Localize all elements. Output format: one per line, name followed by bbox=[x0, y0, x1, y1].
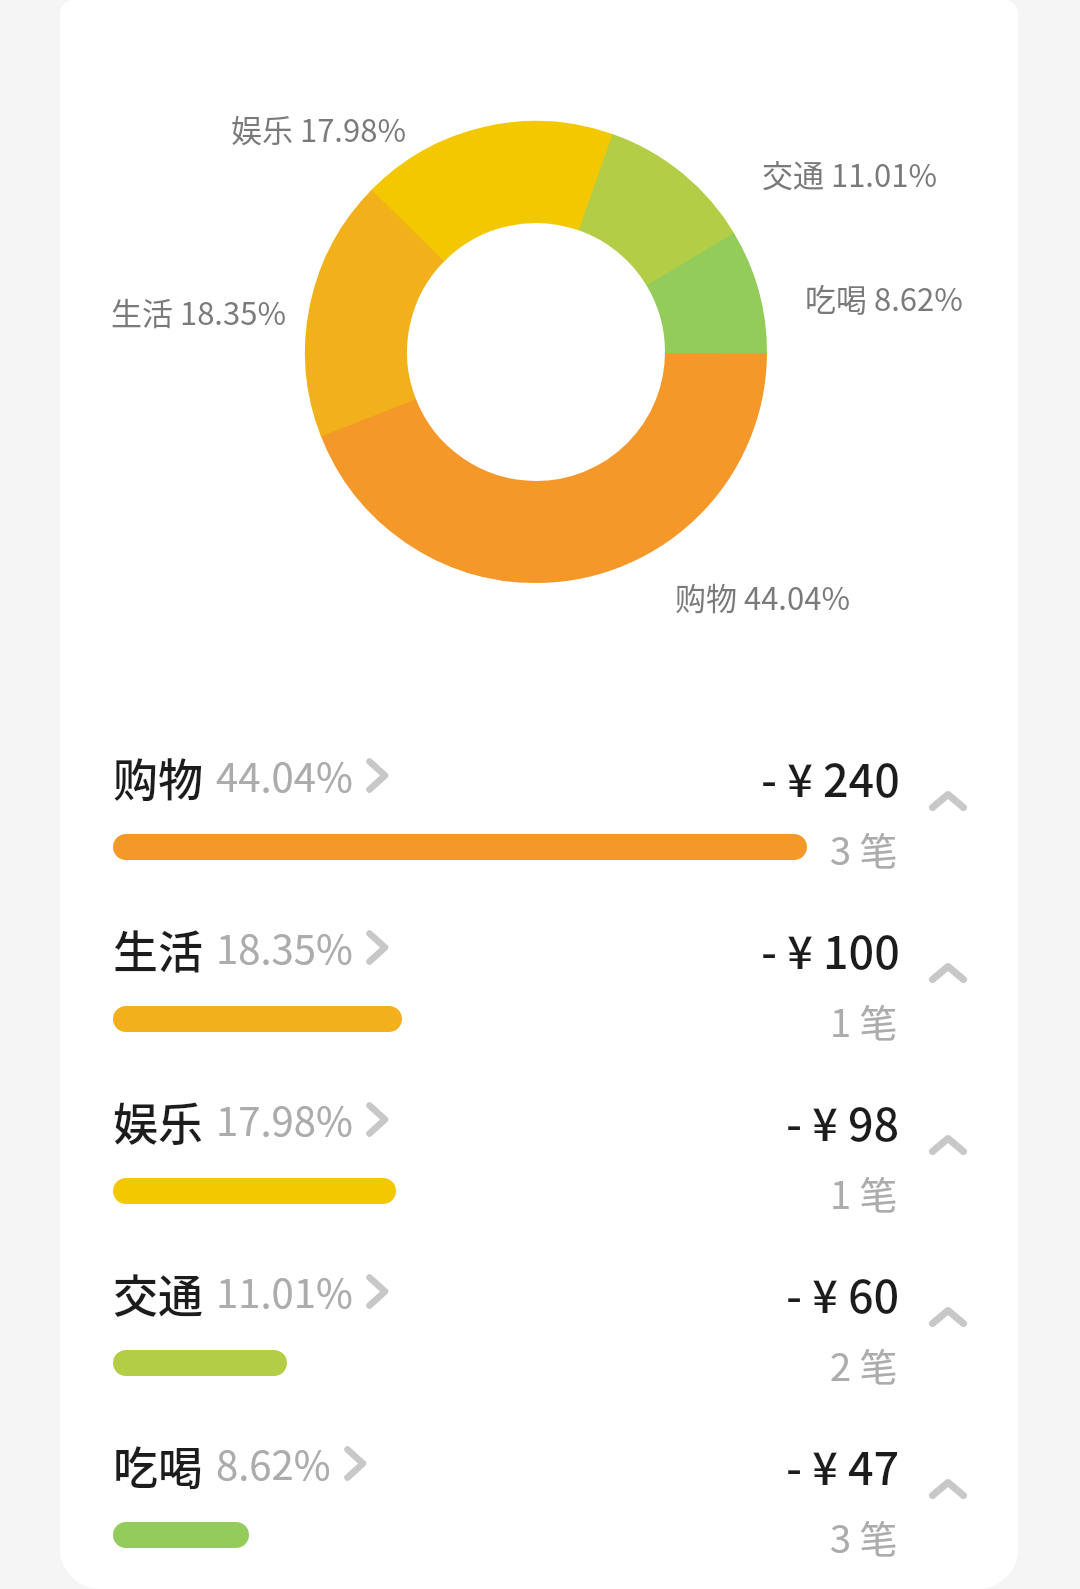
staticText: 17.98% bbox=[216, 1090, 353, 1148]
staticText: 1 笔 bbox=[830, 993, 898, 1048]
staticText: 1 笔 bbox=[830, 1165, 898, 1220]
staticText: 18.35% bbox=[216, 918, 353, 976]
staticText: 吃喝 bbox=[113, 1433, 204, 1493]
staticText: - ¥ 60 bbox=[786, 1261, 900, 1321]
staticText: - ¥ 240 bbox=[761, 745, 900, 805]
staticText: 生活 bbox=[113, 917, 204, 977]
staticText: - ¥ 47 bbox=[786, 1433, 900, 1493]
staticText: 2 笔 bbox=[830, 1337, 898, 1392]
staticText: 购物 44.04% bbox=[675, 574, 850, 618]
staticText: 吃喝 8.62% bbox=[805, 275, 963, 319]
button[interactable]: 娱乐 bbox=[60, 1044, 1018, 1216]
staticText: - ¥ 100 bbox=[761, 917, 900, 977]
staticText: 44.04% bbox=[216, 746, 353, 804]
button[interactable]: 购物 bbox=[60, 700, 1018, 872]
staticText: 11.01% bbox=[216, 1262, 353, 1320]
staticText: 3 笔 bbox=[830, 1509, 898, 1564]
staticText: 交通 bbox=[113, 1261, 204, 1321]
staticText: 娱乐 17.98% bbox=[231, 106, 406, 150]
button[interactable]: 交通 bbox=[60, 1216, 1018, 1388]
button[interactable]: 生活 bbox=[60, 872, 1018, 1044]
staticText: 娱乐 bbox=[113, 1089, 204, 1149]
staticText: 交通 11.01% bbox=[762, 151, 937, 195]
staticText: 8.62% bbox=[216, 1434, 331, 1492]
staticText: - ¥ 98 bbox=[786, 1089, 900, 1149]
staticText: 生活 18.35% bbox=[111, 289, 286, 333]
button[interactable]: 吃喝 bbox=[60, 1388, 1018, 1560]
staticText: 3 笔 bbox=[830, 821, 898, 876]
staticText: 购物 bbox=[113, 745, 204, 805]
